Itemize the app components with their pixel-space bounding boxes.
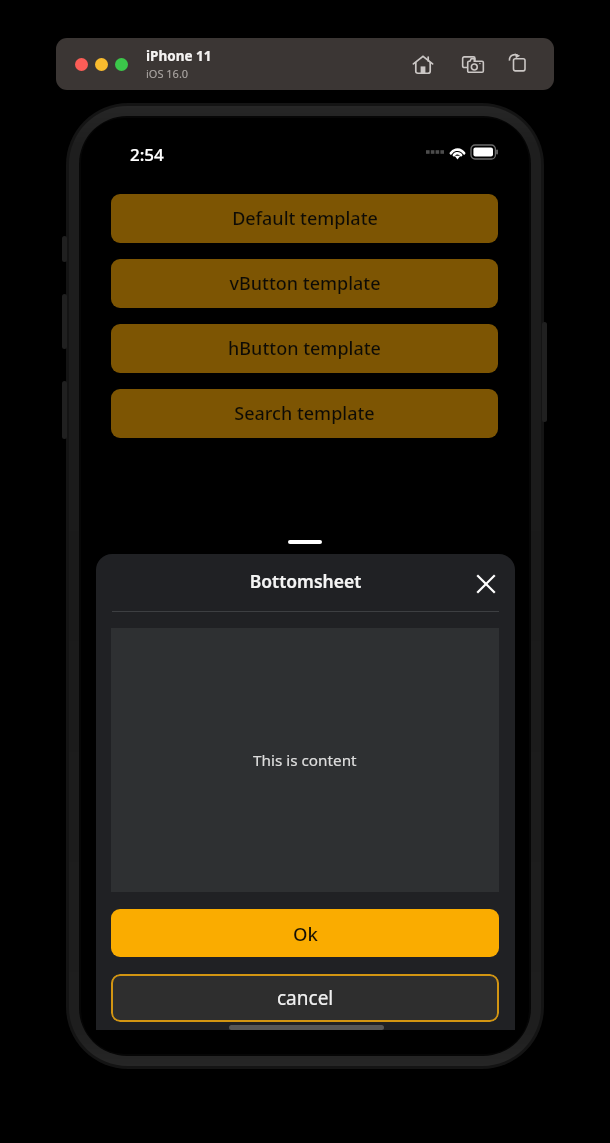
- staticText: cancel: [277, 985, 334, 1011]
- staticText: iOS 16.0: [146, 66, 189, 81]
- staticText: vButton template: [229, 271, 381, 296]
- button[interactable]: Default template: [111, 194, 498, 243]
- button[interactable]: Minimize window: [95, 58, 108, 71]
- staticText: iPhone 11: [146, 47, 212, 65]
- button[interactable]: Close window: [75, 58, 88, 71]
- button[interactable]: Ok: [111, 909, 499, 957]
- button[interactable]: Maximize window: [115, 58, 128, 71]
- staticText: Bottomsheet: [96, 569, 515, 593]
- button[interactable]: Search template: [111, 389, 498, 438]
- button[interactable]: Close bottom sheet: [470, 568, 502, 600]
- staticText: Default template: [232, 206, 378, 231]
- button[interactable]: Rotate: [508, 49, 538, 79]
- button[interactable]: Screenshot: [458, 49, 488, 79]
- button[interactable]: Home: [408, 49, 438, 79]
- button[interactable]: cancel: [111, 974, 499, 1022]
- button[interactable]: hButton template: [111, 324, 498, 373]
- staticText: hButton template: [228, 336, 381, 361]
- staticText: Ok: [293, 921, 318, 946]
- button[interactable]: vButton template: [111, 259, 498, 308]
- staticText: Search template: [234, 401, 375, 426]
- staticText: This is content: [253, 750, 357, 771]
- staticText: 2:54: [130, 143, 164, 166]
